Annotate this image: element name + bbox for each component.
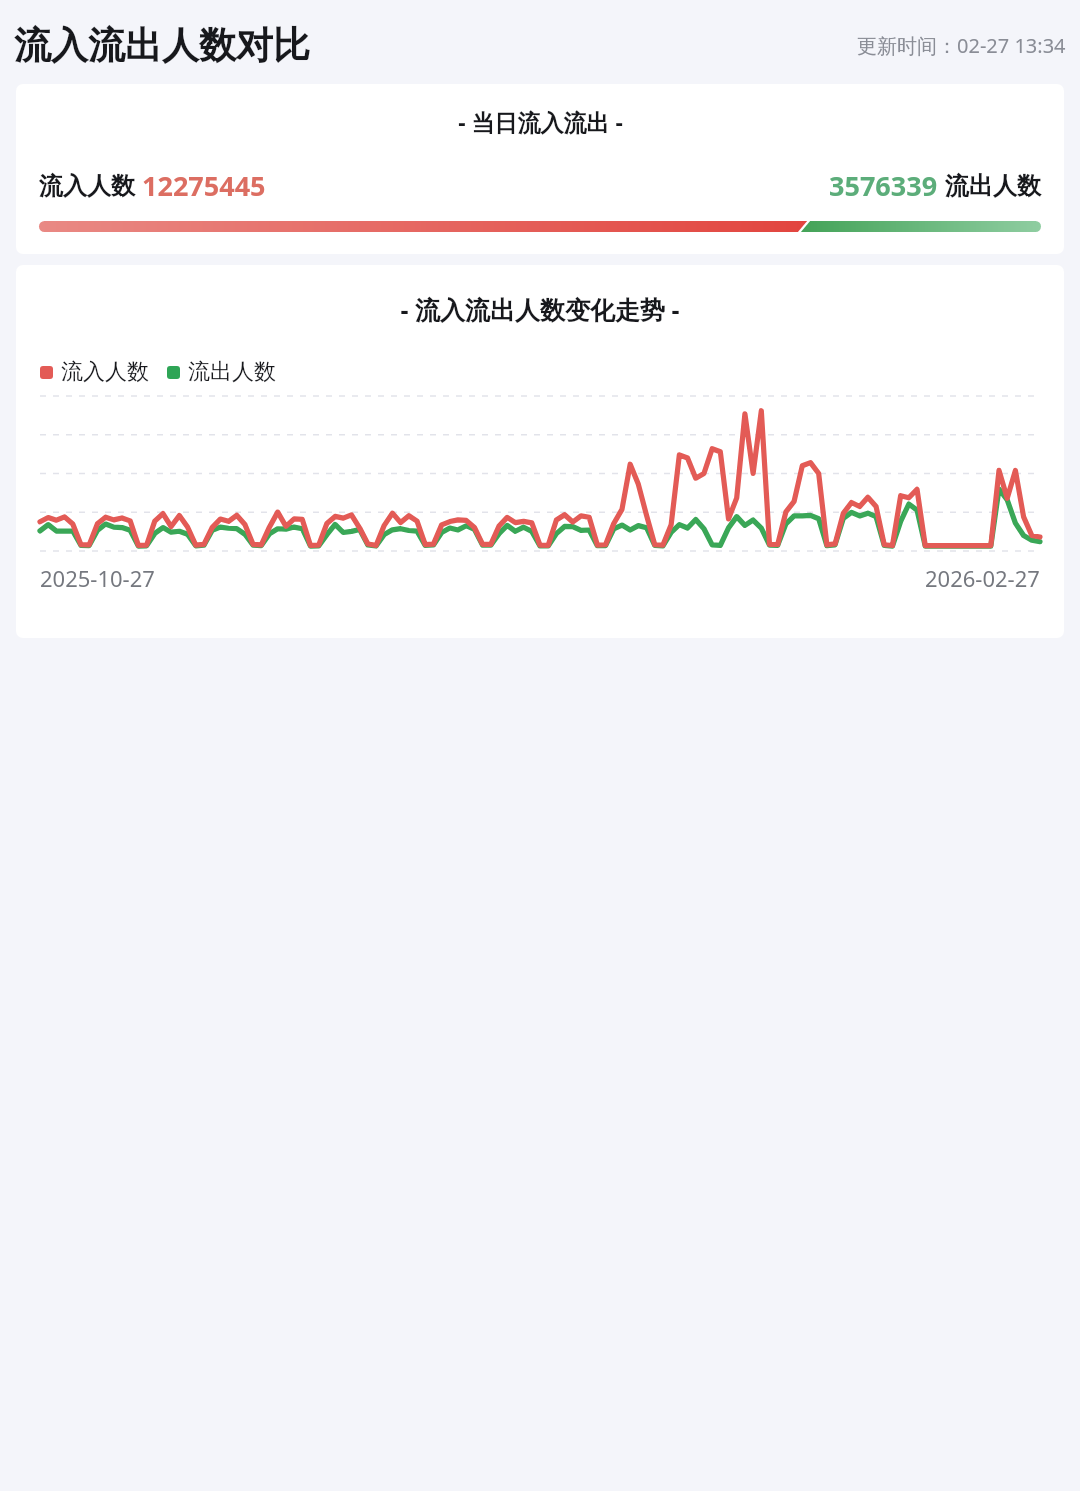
staticText: 3576339: [829, 167, 938, 204]
other: 流入流出人数变化走势图表: [40, 396, 1040, 551]
staticText: 更新时间：02-27 13:34: [857, 32, 1066, 59]
staticText: 流入人数: [61, 358, 149, 386]
button[interactable]: - 流入流出人数变化走势 -: [16, 265, 1064, 638]
staticText: 2025-10-27: [40, 563, 155, 593]
staticText: 12275445: [142, 167, 266, 204]
staticText: 流出人数: [188, 358, 276, 386]
staticText: 2026-02-27: [925, 563, 1040, 593]
staticText: 流入流出人数对比: [14, 22, 310, 69]
button[interactable]: - 当日流入流出 -: [16, 84, 1064, 254]
staticText: - 当日流入流出 -: [458, 106, 623, 137]
staticText: - 流入流出人数变化走势 -: [400, 292, 680, 326]
staticText: 流入人数: [39, 171, 135, 201]
staticText: 流出人数: [945, 171, 1041, 201]
